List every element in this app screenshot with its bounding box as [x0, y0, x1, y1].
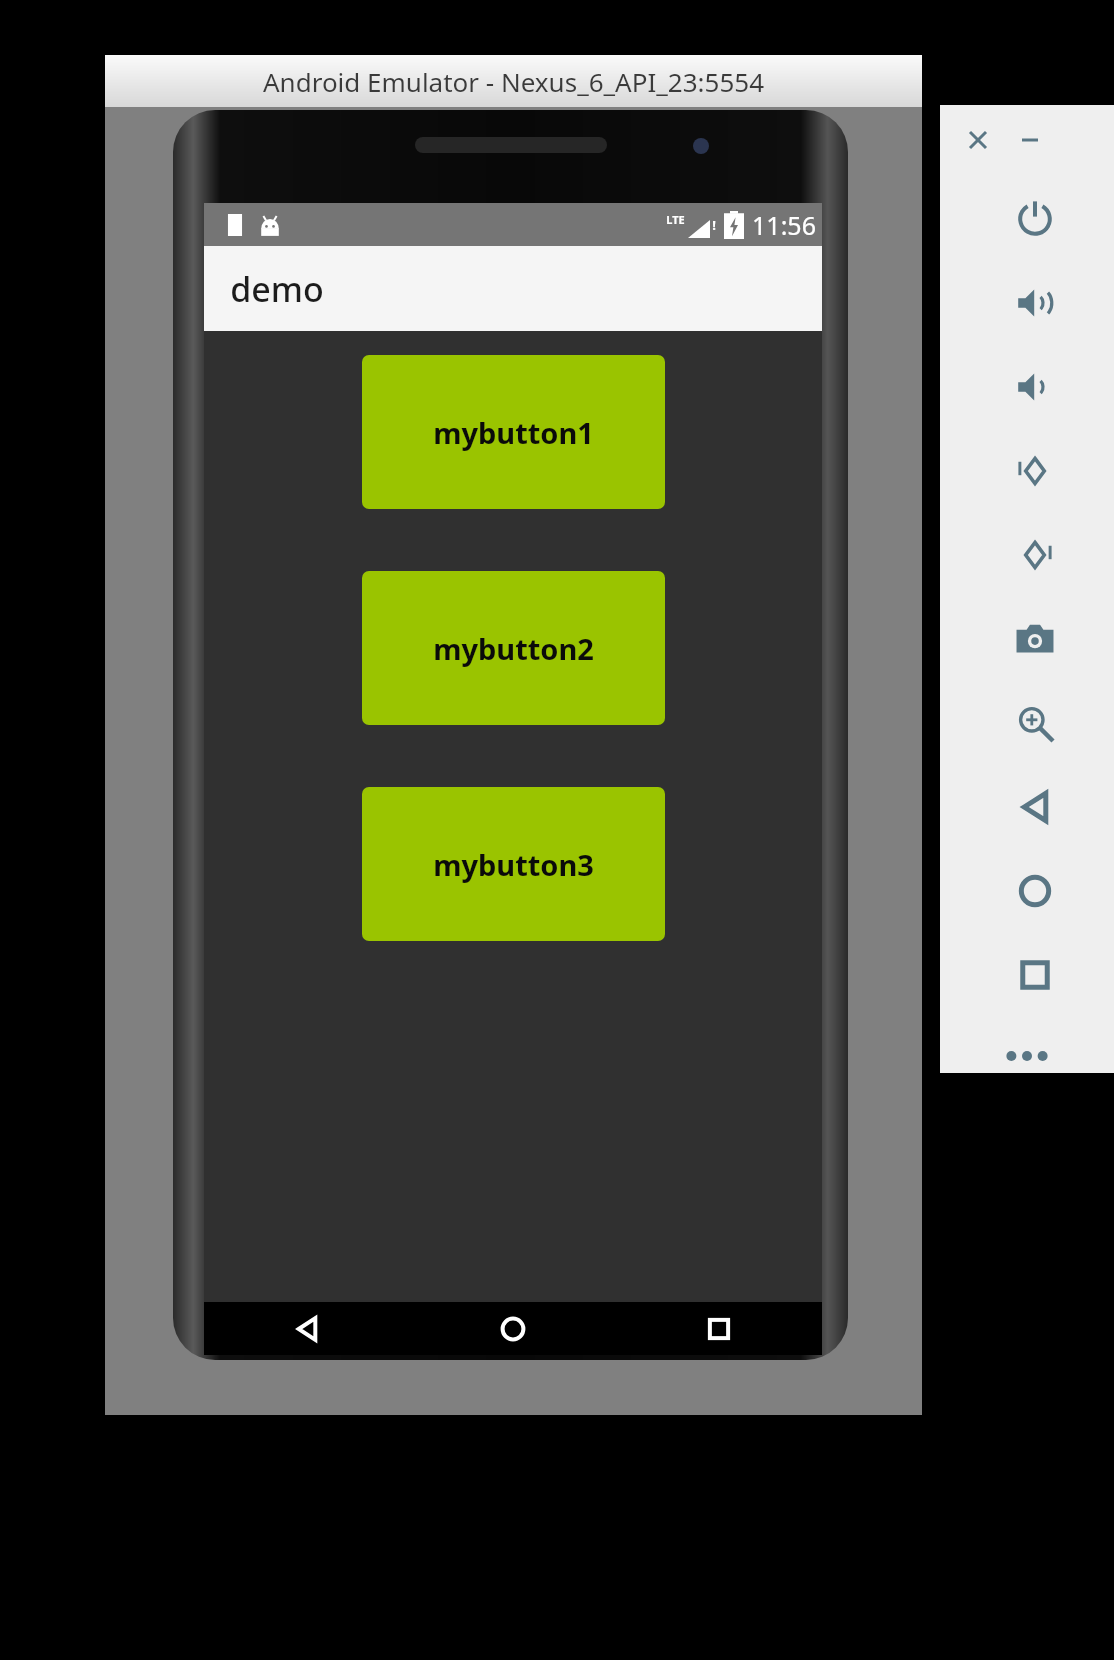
button[interactable]: mybutton2: [362, 571, 665, 725]
button[interactable]: Home: [940, 849, 1114, 933]
staticText: 11:56: [752, 208, 816, 242]
button[interactable]: Back: [204, 1302, 410, 1355]
button[interactable]: Rotate left: [940, 429, 1114, 513]
staticText: mybutton2: [433, 629, 594, 668]
staticText: mybutton1: [433, 413, 594, 452]
staticText: Android Emulator - Nexus_6_API_23:5554: [263, 64, 764, 99]
button[interactable]: Rotate right: [940, 513, 1114, 597]
button[interactable]: More: [940, 1039, 1114, 1073]
button[interactable]: Back: [940, 765, 1114, 849]
button[interactable]: Recents: [616, 1302, 822, 1355]
button[interactable]: Overview: [940, 933, 1114, 1017]
staticText: demo: [230, 266, 324, 312]
button[interactable]: Close: [960, 122, 996, 158]
staticText: !: [712, 216, 716, 234]
button[interactable]: mybutton1: [362, 355, 665, 509]
button[interactable]: Minimize: [1012, 122, 1048, 158]
button[interactable]: Volume down: [940, 345, 1114, 429]
button[interactable]: Home: [410, 1302, 616, 1355]
staticText: LTE: [666, 212, 685, 227]
button[interactable]: Screenshot: [940, 597, 1114, 681]
button[interactable]: Power: [940, 177, 1114, 261]
button[interactable]: Volume up: [940, 261, 1114, 345]
button[interactable]: Zoom: [940, 681, 1114, 765]
button[interactable]: mybutton3: [362, 787, 665, 941]
staticText: mybutton3: [433, 845, 594, 884]
